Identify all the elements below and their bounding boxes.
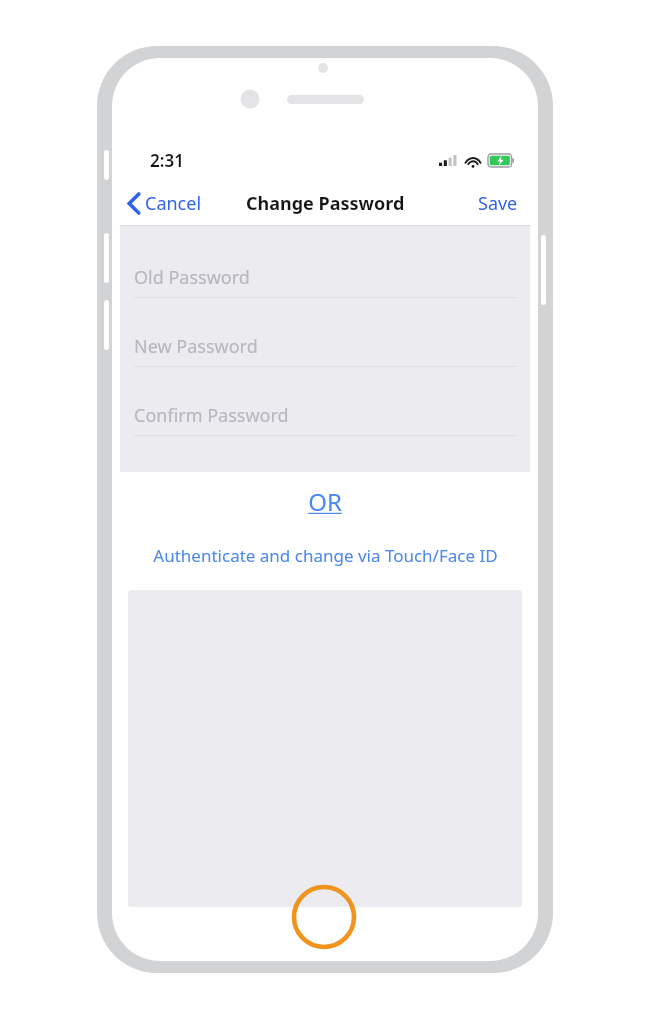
staticText: 2:31 xyxy=(150,149,184,172)
staticText: Confirm Password xyxy=(134,403,289,428)
button[interactable]: Save xyxy=(466,182,530,225)
button[interactable]: Home xyxy=(292,885,356,949)
button[interactable]: Old Password xyxy=(120,265,530,298)
staticText: Old Password xyxy=(134,265,250,290)
staticText: Authenticate and change via Touch/Face I… xyxy=(153,544,498,567)
button[interactable]: New Password xyxy=(120,334,530,367)
staticText: Change Password xyxy=(246,191,405,216)
button[interactable]: Authenticate and change via Touch/Face I… xyxy=(120,541,530,570)
staticText: Save xyxy=(478,191,518,216)
staticText: New Password xyxy=(134,334,258,359)
button[interactable]: Confirm Password xyxy=(120,403,530,436)
staticText: OR xyxy=(308,485,342,518)
button[interactable]: Cancel xyxy=(120,183,212,224)
button[interactable]: OR xyxy=(120,482,530,521)
staticText: Cancel xyxy=(145,191,202,216)
